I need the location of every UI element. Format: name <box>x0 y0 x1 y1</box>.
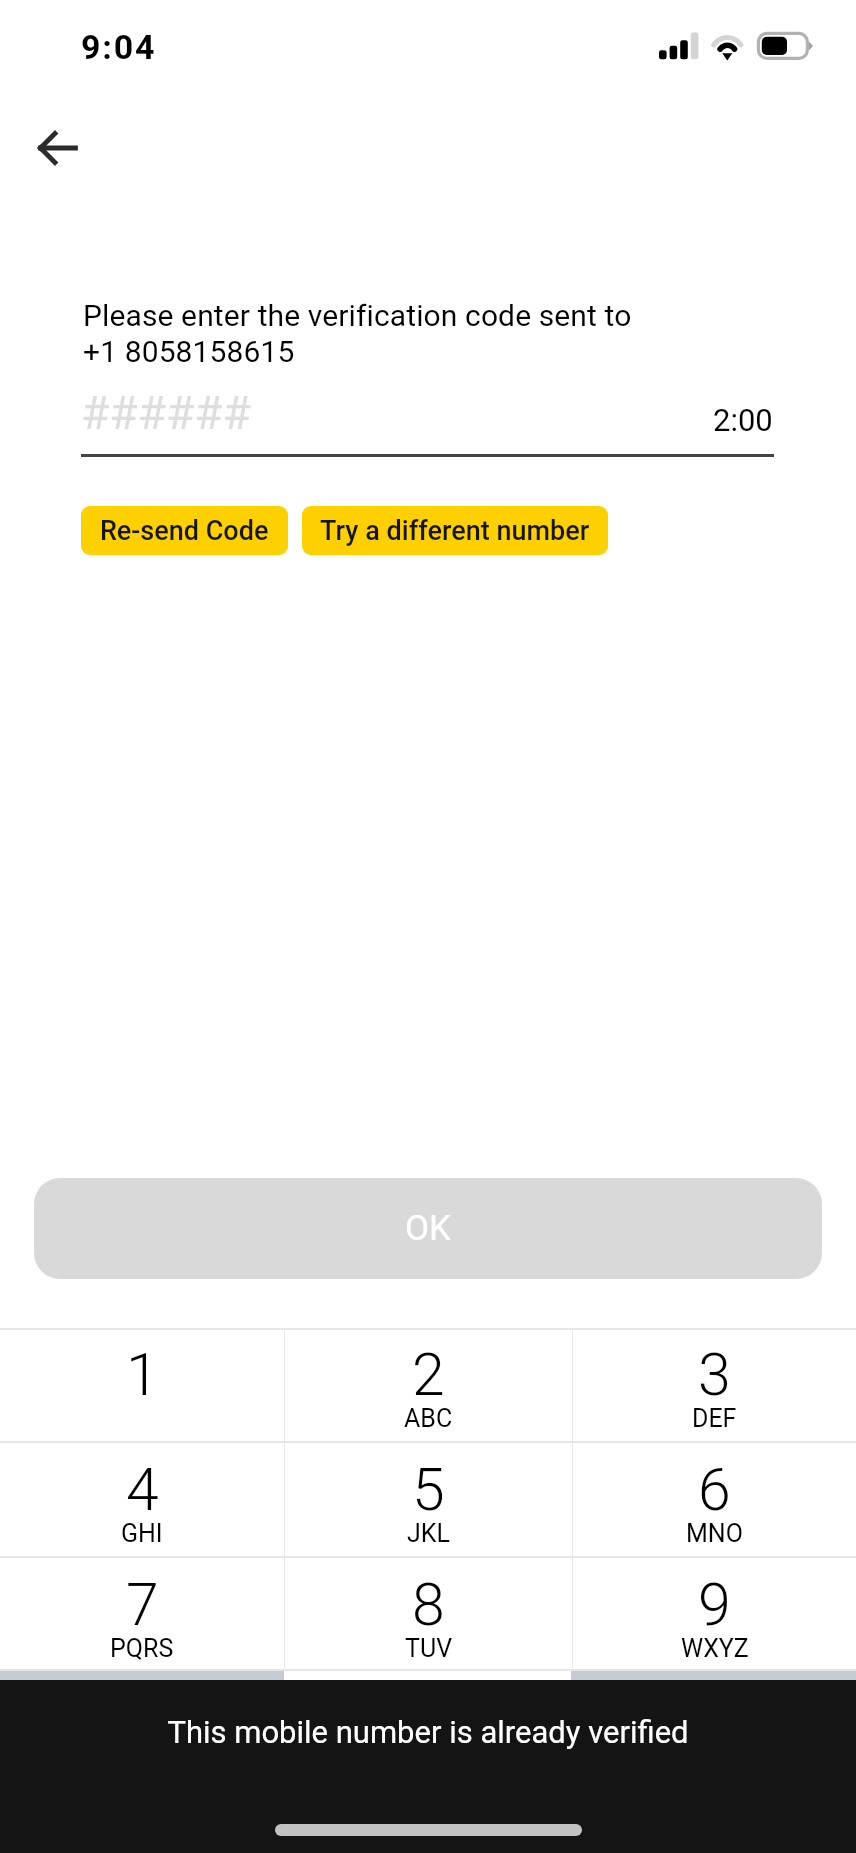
button[interactable]: 4 <box>0 1443 284 1556</box>
button[interactable]: 1 <box>0 1328 284 1441</box>
staticText: GHI <box>121 1519 163 1548</box>
staticText: 3 <box>698 1340 731 1409</box>
staticText: 6 <box>698 1455 731 1524</box>
button[interactable]: 5 <box>285 1443 572 1556</box>
staticText: 9:04 <box>81 27 157 67</box>
staticText: 5 <box>412 1455 445 1524</box>
button[interactable]: 6 <box>573 1443 856 1556</box>
button[interactable]: Re-send Code <box>81 506 288 555</box>
staticText: Re-send Code <box>100 515 269 547</box>
staticText: 2:00 <box>713 402 773 438</box>
button[interactable]: 9 <box>573 1558 856 1668</box>
button[interactable]: 7 <box>0 1558 284 1668</box>
button[interactable]: OK <box>34 1178 822 1279</box>
staticText: 8 <box>412 1570 445 1639</box>
staticText: 2 <box>412 1340 445 1409</box>
staticText: Please enter the verification code sent … <box>83 298 632 369</box>
staticText: Try a different number <box>320 515 590 547</box>
staticText: WXYZ <box>681 1634 749 1663</box>
button[interactable]: 3 <box>573 1328 856 1441</box>
button[interactable]: 2 <box>285 1328 572 1441</box>
staticText: ###### <box>81 386 251 440</box>
button[interactable]: Try a different number <box>302 506 608 555</box>
staticText: JKL <box>407 1519 450 1548</box>
staticText: ABC <box>404 1404 453 1433</box>
staticText: 4 <box>126 1455 159 1524</box>
staticText: DEF <box>692 1404 737 1433</box>
staticText: OK <box>405 1208 452 1249</box>
staticText: MNO <box>686 1519 743 1548</box>
staticText: 7 <box>126 1570 159 1639</box>
staticText: 1 <box>126 1340 159 1409</box>
button[interactable]: 8 <box>285 1558 572 1668</box>
staticText: This mobile number is already verified <box>167 1714 689 1750</box>
staticText: 9 <box>698 1570 731 1639</box>
button[interactable]: Back <box>18 108 98 188</box>
staticText: TUV <box>405 1634 453 1663</box>
staticText: PQRS <box>110 1634 174 1663</box>
